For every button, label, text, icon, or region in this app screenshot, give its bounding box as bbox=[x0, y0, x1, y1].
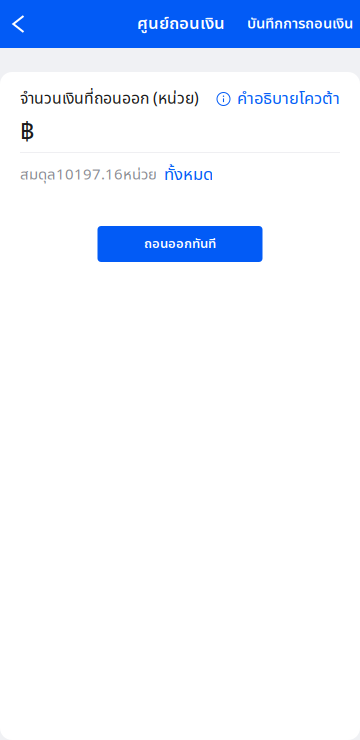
staticText: ฿ bbox=[20, 114, 34, 151]
staticText: บันทึกการถอนเงิน bbox=[247, 13, 353, 35]
staticText: ถอนออกทันที bbox=[144, 234, 216, 254]
staticText: ทั้งหมด bbox=[164, 162, 213, 188]
button[interactable]: ถอนออกทันที bbox=[97, 226, 262, 262]
staticText: สมดุล10197.16หน่วย bbox=[20, 164, 157, 186]
button[interactable]: ทั้งหมด bbox=[164, 162, 213, 188]
staticText: คำอธิบายโควต้า bbox=[237, 86, 340, 111]
button[interactable]: คำอธิบายโควต้า bbox=[217, 86, 340, 111]
button[interactable]: บันทึกการถอนเงิน bbox=[247, 0, 360, 48]
button[interactable]: Back bbox=[0, 0, 37, 48]
staticText: จำนวนเงินที่ถอนออก (หน่วย) bbox=[20, 87, 199, 111]
staticText: ศูนย์ถอนเงิน bbox=[137, 11, 225, 37]
